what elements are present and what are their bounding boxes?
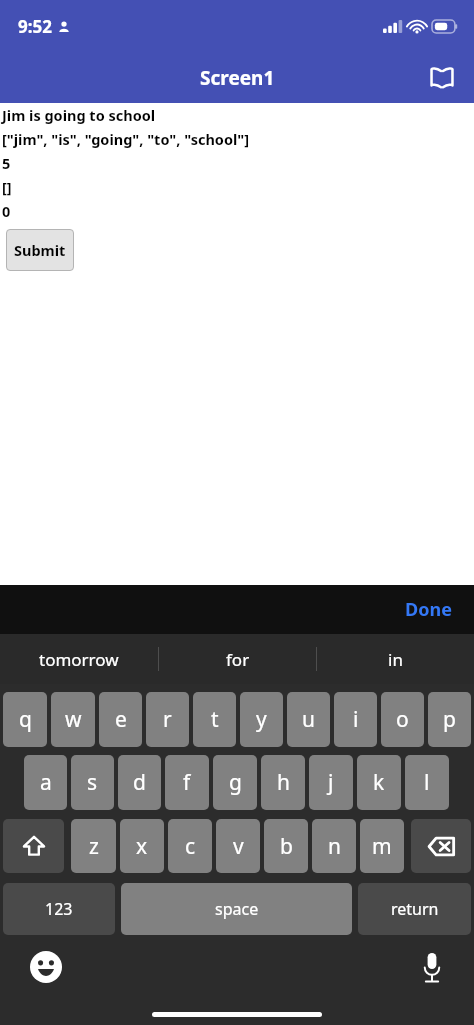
staticText: 9:52: [18, 15, 52, 38]
button[interactable]: 123: [3, 883, 115, 935]
staticText: tomorrow: [39, 648, 119, 671]
staticText: e: [115, 705, 127, 734]
button[interactable]: space: [121, 883, 352, 935]
staticText: Jim is going to school: [2, 105, 156, 125]
button[interactable]: Dictation: [412, 947, 452, 987]
button[interactable]: t: [193, 692, 236, 747]
staticText: []: [2, 177, 12, 197]
button[interactable]: e: [99, 692, 142, 747]
button[interactable]: i: [334, 692, 377, 747]
button[interactable]: in: [317, 634, 474, 684]
staticText: o: [396, 705, 409, 734]
staticText: Submit: [14, 240, 66, 260]
button[interactable]: Emoji: [26, 947, 66, 987]
button[interactable]: k: [357, 755, 401, 810]
button[interactable]: d: [118, 755, 161, 810]
button[interactable]: b: [264, 819, 308, 873]
button[interactable]: o: [381, 692, 424, 747]
staticText: y: [256, 705, 267, 734]
button[interactable]: return: [358, 883, 471, 935]
staticText: f: [183, 768, 191, 797]
button[interactable]: Shift: [3, 819, 64, 873]
staticText: j: [328, 768, 334, 797]
staticText: m: [372, 832, 392, 861]
staticText: t: [211, 705, 219, 734]
staticText: s: [87, 768, 98, 797]
button[interactable]: tomorrow: [0, 634, 158, 684]
staticText: w: [65, 705, 82, 734]
button[interactable]: a: [24, 755, 67, 810]
button[interactable]: s: [71, 755, 114, 810]
staticText: b: [280, 832, 293, 861]
staticText: ["jim", "is", "going", "to", "school"]: [2, 129, 250, 149]
button[interactable]: y: [240, 692, 283, 747]
staticText: p: [443, 705, 456, 734]
staticText: l: [424, 768, 430, 797]
button[interactable]: h: [261, 755, 305, 810]
staticText: v: [233, 832, 244, 861]
button[interactable]: v: [216, 819, 260, 873]
button[interactable]: x: [120, 819, 164, 873]
staticText: g: [229, 768, 242, 797]
staticText: i: [353, 705, 359, 734]
button[interactable]: r: [146, 692, 189, 747]
staticText: 0: [2, 201, 11, 221]
staticText: r: [163, 705, 172, 734]
button[interactable]: p: [428, 692, 471, 747]
button[interactable]: w: [51, 692, 95, 747]
button[interactable]: z: [71, 819, 116, 873]
button[interactable]: f: [165, 755, 209, 810]
staticText: return: [391, 898, 439, 920]
staticText: c: [185, 832, 196, 861]
staticText: Done: [405, 597, 452, 622]
staticText: k: [373, 768, 385, 797]
staticText: 5: [2, 153, 11, 173]
button[interactable]: q: [3, 692, 47, 747]
button[interactable]: Submit: [6, 229, 74, 271]
staticText: in: [388, 648, 403, 671]
button[interactable]: m: [360, 819, 404, 873]
staticText: z: [89, 832, 99, 861]
staticText: space: [215, 898, 259, 920]
staticText: n: [328, 832, 341, 861]
button[interactable]: n: [312, 819, 356, 873]
button[interactable]: u: [287, 692, 330, 747]
button[interactable]: Done: [405, 597, 452, 622]
staticText: x: [136, 832, 148, 861]
button[interactable]: Open book: [420, 56, 464, 100]
staticText: Screen1: [200, 65, 275, 91]
staticText: u: [302, 705, 315, 734]
staticText: h: [277, 768, 290, 797]
staticText: 123: [45, 898, 73, 920]
button[interactable]: Backspace: [411, 819, 471, 873]
staticText: d: [133, 768, 146, 797]
staticText: q: [19, 705, 32, 734]
button[interactable]: l: [405, 755, 449, 810]
button[interactable]: g: [213, 755, 257, 810]
button[interactable]: for: [159, 634, 316, 684]
button[interactable]: j: [309, 755, 353, 810]
staticText: for: [226, 648, 250, 671]
button[interactable]: c: [168, 819, 212, 873]
staticText: a: [40, 768, 52, 797]
